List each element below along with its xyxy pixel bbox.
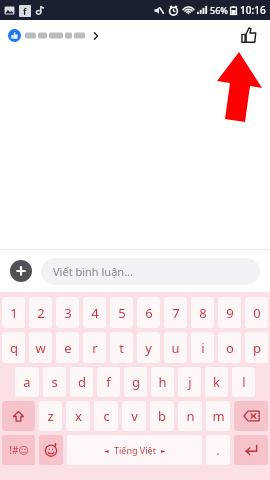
button[interactable]: i (191, 332, 214, 363)
staticText: 56% (210, 4, 228, 16)
staticText: 10:16 (240, 3, 266, 17)
staticText: !#☺ (9, 443, 29, 457)
staticText: o (226, 339, 234, 357)
button[interactable]: u (164, 332, 187, 363)
button[interactable]: 5 (110, 297, 133, 328)
button[interactable]: n (178, 401, 202, 431)
staticText: ► (161, 447, 166, 454)
button[interactable]: s (43, 367, 66, 397)
staticText: 9 (226, 304, 234, 322)
staticText: 0 (253, 304, 261, 322)
staticText: 4 (91, 304, 99, 322)
button[interactable]: d (70, 367, 93, 397)
staticText: 1 (10, 304, 18, 322)
staticText: m (212, 407, 225, 425)
staticText: 8 (199, 304, 207, 322)
staticText: v (131, 407, 138, 425)
button[interactable]: g (124, 367, 147, 397)
button[interactable]: 9 (218, 297, 241, 328)
staticText: x (75, 407, 82, 425)
staticText: i (201, 339, 205, 357)
button[interactable]: o (218, 332, 241, 363)
staticText: y (145, 339, 152, 357)
button[interactable]: k (205, 367, 228, 397)
button[interactable]: Viết bình luận... (41, 258, 260, 285)
button[interactable]: ◄ (67, 435, 202, 465)
staticText: w (35, 339, 46, 357)
button[interactable]: 6 (137, 297, 160, 328)
staticText: n (186, 407, 195, 425)
button[interactable]: q (2, 332, 25, 363)
staticText: 6 (145, 304, 153, 322)
button[interactable]: a (15, 367, 39, 397)
button[interactable]: l (232, 367, 255, 397)
button[interactable]: x (66, 401, 90, 431)
button[interactable]: 8 (191, 297, 214, 328)
button[interactable]: 3 (56, 297, 79, 328)
staticText: q (10, 339, 18, 357)
staticText: r (92, 339, 98, 357)
button[interactable]: t (110, 332, 133, 363)
button[interactable]: j (178, 367, 201, 397)
staticText: ◄ (104, 447, 109, 454)
staticText: s (51, 373, 58, 391)
staticText: h (158, 373, 167, 391)
staticText: j (188, 373, 192, 391)
staticText: Tiếng Việt (114, 444, 156, 456)
button[interactable] (234, 435, 268, 465)
staticText: 7 (172, 304, 180, 322)
staticText: Viết bình luận... (53, 264, 133, 279)
staticText: c (103, 407, 110, 425)
staticText: z (47, 407, 54, 425)
staticText: p (253, 339, 261, 357)
staticText: b (158, 407, 166, 425)
staticText: f (23, 5, 27, 17)
staticText: g (132, 373, 140, 391)
button[interactable]: w (29, 332, 52, 363)
button[interactable]: 7 (164, 297, 187, 328)
button[interactable]: 0 (245, 297, 268, 328)
button[interactable] (39, 435, 63, 465)
button[interactable]: r (83, 332, 106, 363)
button[interactable]: b (150, 401, 174, 431)
staticText: 3 (64, 304, 72, 322)
button[interactable]: e (56, 332, 79, 363)
staticText: . (216, 441, 220, 459)
button[interactable]: !#☺ (2, 435, 35, 465)
button[interactable]: z (39, 401, 62, 431)
button[interactable]: 4 (83, 297, 106, 328)
staticText: a (23, 373, 31, 391)
staticText: 5 (118, 304, 126, 322)
staticText: e (64, 339, 72, 357)
button[interactable]: v (122, 401, 146, 431)
button[interactable]: h (151, 367, 174, 397)
staticText: l (242, 373, 246, 391)
button[interactable]: m (206, 401, 230, 431)
staticText: 2 (37, 304, 45, 322)
staticText: u (171, 339, 180, 357)
button[interactable]: f (97, 367, 120, 397)
staticText: d (78, 373, 86, 391)
button[interactable] (234, 401, 268, 431)
staticText: k (213, 373, 220, 391)
button[interactable]: y (137, 332, 160, 363)
button[interactable]: 1 (2, 297, 25, 328)
button[interactable] (2, 401, 35, 431)
button[interactable]: Like (236, 22, 262, 48)
button[interactable] (8, 27, 101, 44)
staticText: f (106, 373, 111, 391)
staticText: t (119, 339, 124, 357)
button[interactable]: Add attachment (10, 260, 32, 282)
button[interactable]: c (94, 401, 118, 431)
button[interactable]: . (206, 435, 230, 465)
button[interactable]: p (245, 332, 268, 363)
button[interactable]: 2 (29, 297, 52, 328)
